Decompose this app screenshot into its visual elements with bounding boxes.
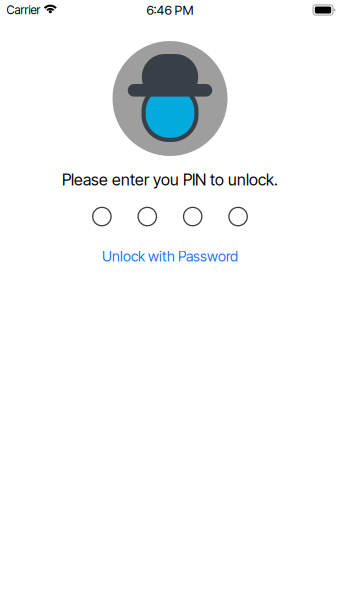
staticText: Please enter you PIN to unlock.	[62, 170, 278, 189]
staticText: Unlock with Password	[102, 248, 238, 265]
staticText: 6:46 PM	[146, 2, 193, 18]
staticText: Carrier	[6, 3, 40, 17]
button[interactable]: Unlock with Password	[102, 248, 238, 265]
